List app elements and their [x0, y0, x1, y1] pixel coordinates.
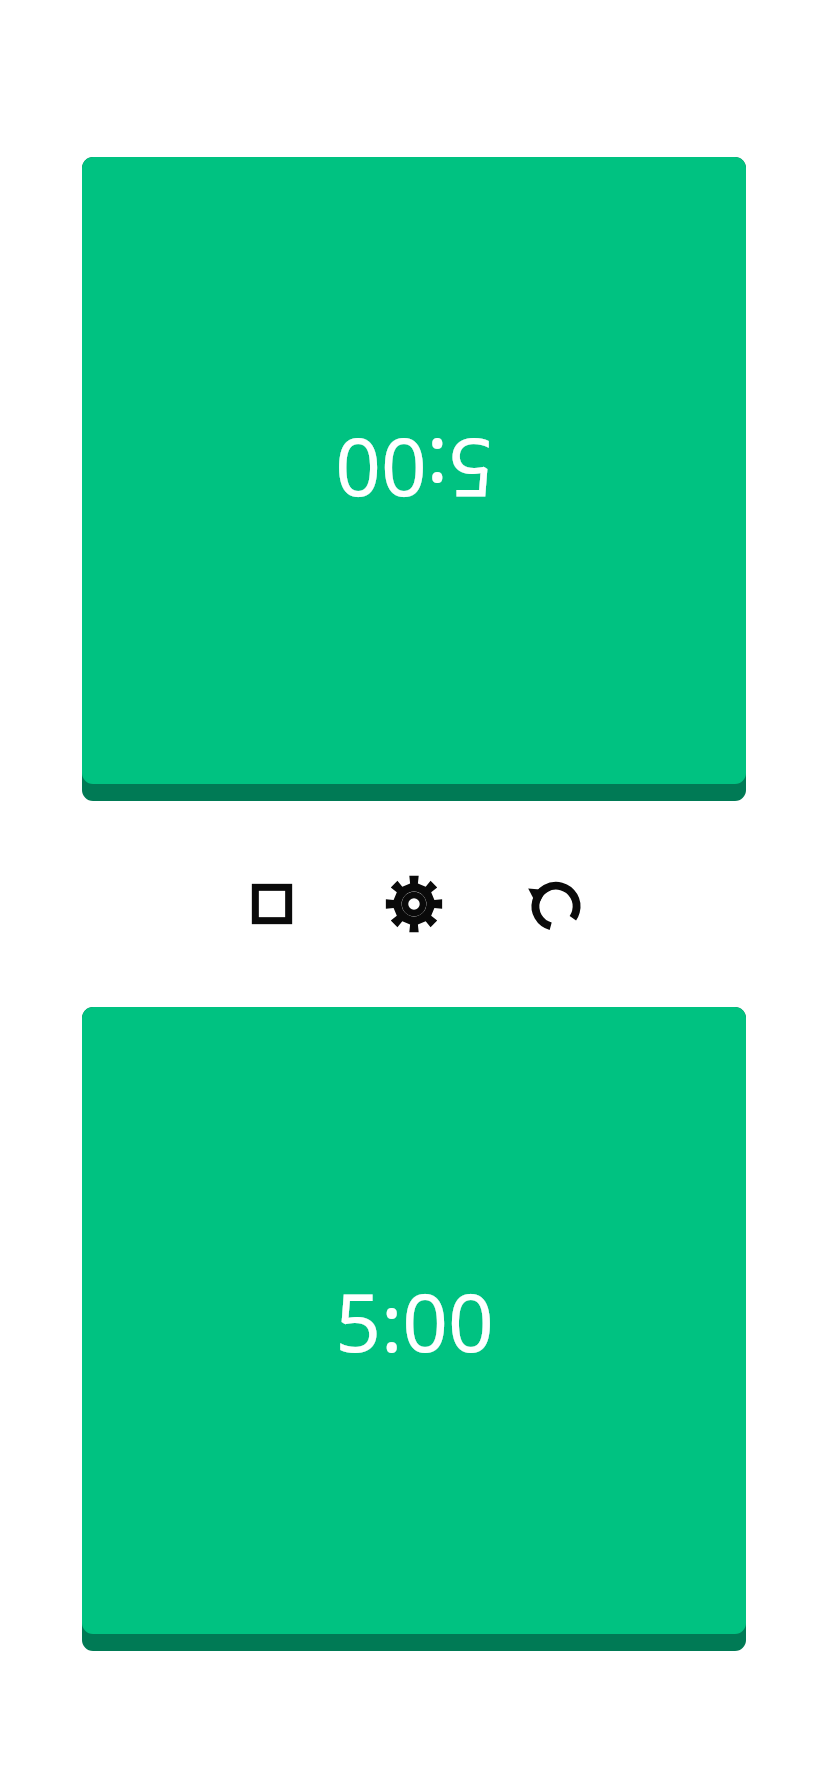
staticText: 5:00 [335, 416, 494, 525]
button[interactable]: 5:00 [82, 157, 746, 801]
button[interactable]: Stop [229, 861, 315, 947]
staticText: 5:00 [335, 1266, 494, 1375]
button[interactable]: Settings [371, 861, 457, 947]
button[interactable]: Restart [513, 861, 599, 947]
button[interactable]: 5:00 [82, 1007, 746, 1651]
